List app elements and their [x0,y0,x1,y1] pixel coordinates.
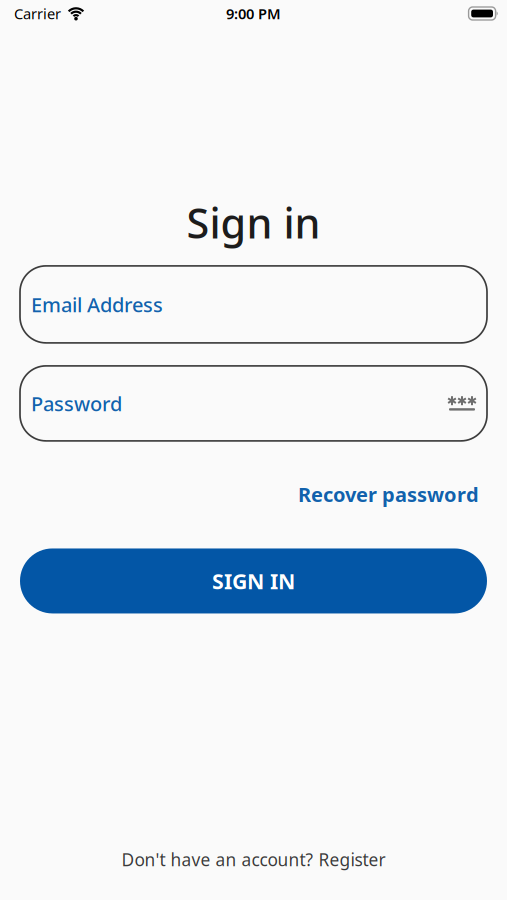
staticText: Don't have an account? Register [121,848,385,871]
staticText: Carrier [14,4,61,23]
staticText: SIGN IN [212,567,295,595]
button[interactable]: Don't have an account? Register [121,848,385,871]
staticText: 9:00 PM [226,4,281,23]
staticText: Password [31,390,122,417]
staticText: Email Address [31,291,163,318]
button[interactable]: Email Address [0,266,507,343]
staticText: Recover password [298,481,479,507]
button[interactable]: SIGN IN [0,548,507,613]
button[interactable]: Password [0,366,507,441]
staticText: Sign in [186,195,320,250]
button[interactable]: Recover password [298,481,479,507]
